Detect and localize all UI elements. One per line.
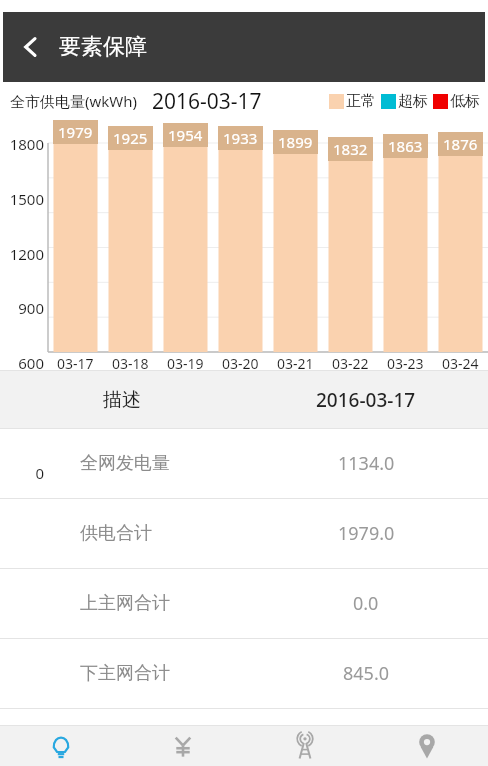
button[interactable]: Network (244, 726, 366, 766)
staticText: 1832 (333, 139, 368, 159)
staticText: 600 (0, 353, 44, 373)
staticText: 超标 (398, 92, 428, 111)
button[interactable]: Lighting (0, 726, 122, 766)
staticText: 1899 (278, 132, 313, 152)
staticText: 1500 (0, 189, 44, 209)
staticText: 全网发电量 (80, 452, 170, 475)
staticText: 低标 (450, 92, 480, 111)
staticText: 供电合计 (80, 522, 152, 545)
staticText: 1134.0 (338, 451, 395, 476)
staticText: 03-19 (167, 354, 204, 373)
button[interactable]: 上主网合计 (0, 569, 488, 638)
button[interactable]: Price (122, 726, 244, 766)
staticText: 1876 (443, 134, 478, 154)
staticText: 845.0 (343, 661, 390, 686)
button[interactable]: Location (366, 726, 488, 766)
staticText: 2016-03-17 (316, 387, 416, 413)
staticText: 1954 (168, 125, 203, 145)
staticText: 0.0 (353, 591, 379, 616)
button[interactable]: 下主网合计 (0, 639, 488, 708)
staticText: 1800 (0, 134, 44, 154)
staticText: 1979 (58, 122, 93, 142)
staticText: 03-23 (387, 354, 424, 373)
staticText: 03-24 (442, 354, 479, 373)
staticText: 要素保障 (59, 33, 147, 61)
staticText: 1933 (223, 128, 258, 148)
staticText: 2016-03-17 (152, 87, 262, 116)
staticText: 900 (0, 298, 44, 318)
staticText: 下主网合计 (80, 662, 170, 685)
staticText: 0 (0, 463, 44, 483)
staticText: 1863 (388, 136, 423, 156)
staticText: 03-21 (277, 354, 314, 373)
staticText: 03-22 (332, 354, 369, 373)
staticText: 描述 (103, 388, 141, 412)
staticText: 03-18 (112, 354, 149, 373)
button[interactable]: Back (3, 12, 59, 82)
staticText: 1979.0 (338, 521, 395, 546)
button[interactable]: 全网发电量 (0, 429, 488, 498)
staticText: 03-17 (57, 354, 94, 373)
button[interactable]: 供电合计 (0, 499, 488, 568)
staticText: 1925 (113, 128, 148, 148)
staticText: 全市供电量(wkWh) (10, 91, 138, 111)
staticText: 03-20 (222, 354, 259, 373)
staticText: 1200 (0, 244, 44, 264)
staticText: 正常 (346, 92, 376, 111)
staticText: 上主网合计 (80, 592, 170, 615)
